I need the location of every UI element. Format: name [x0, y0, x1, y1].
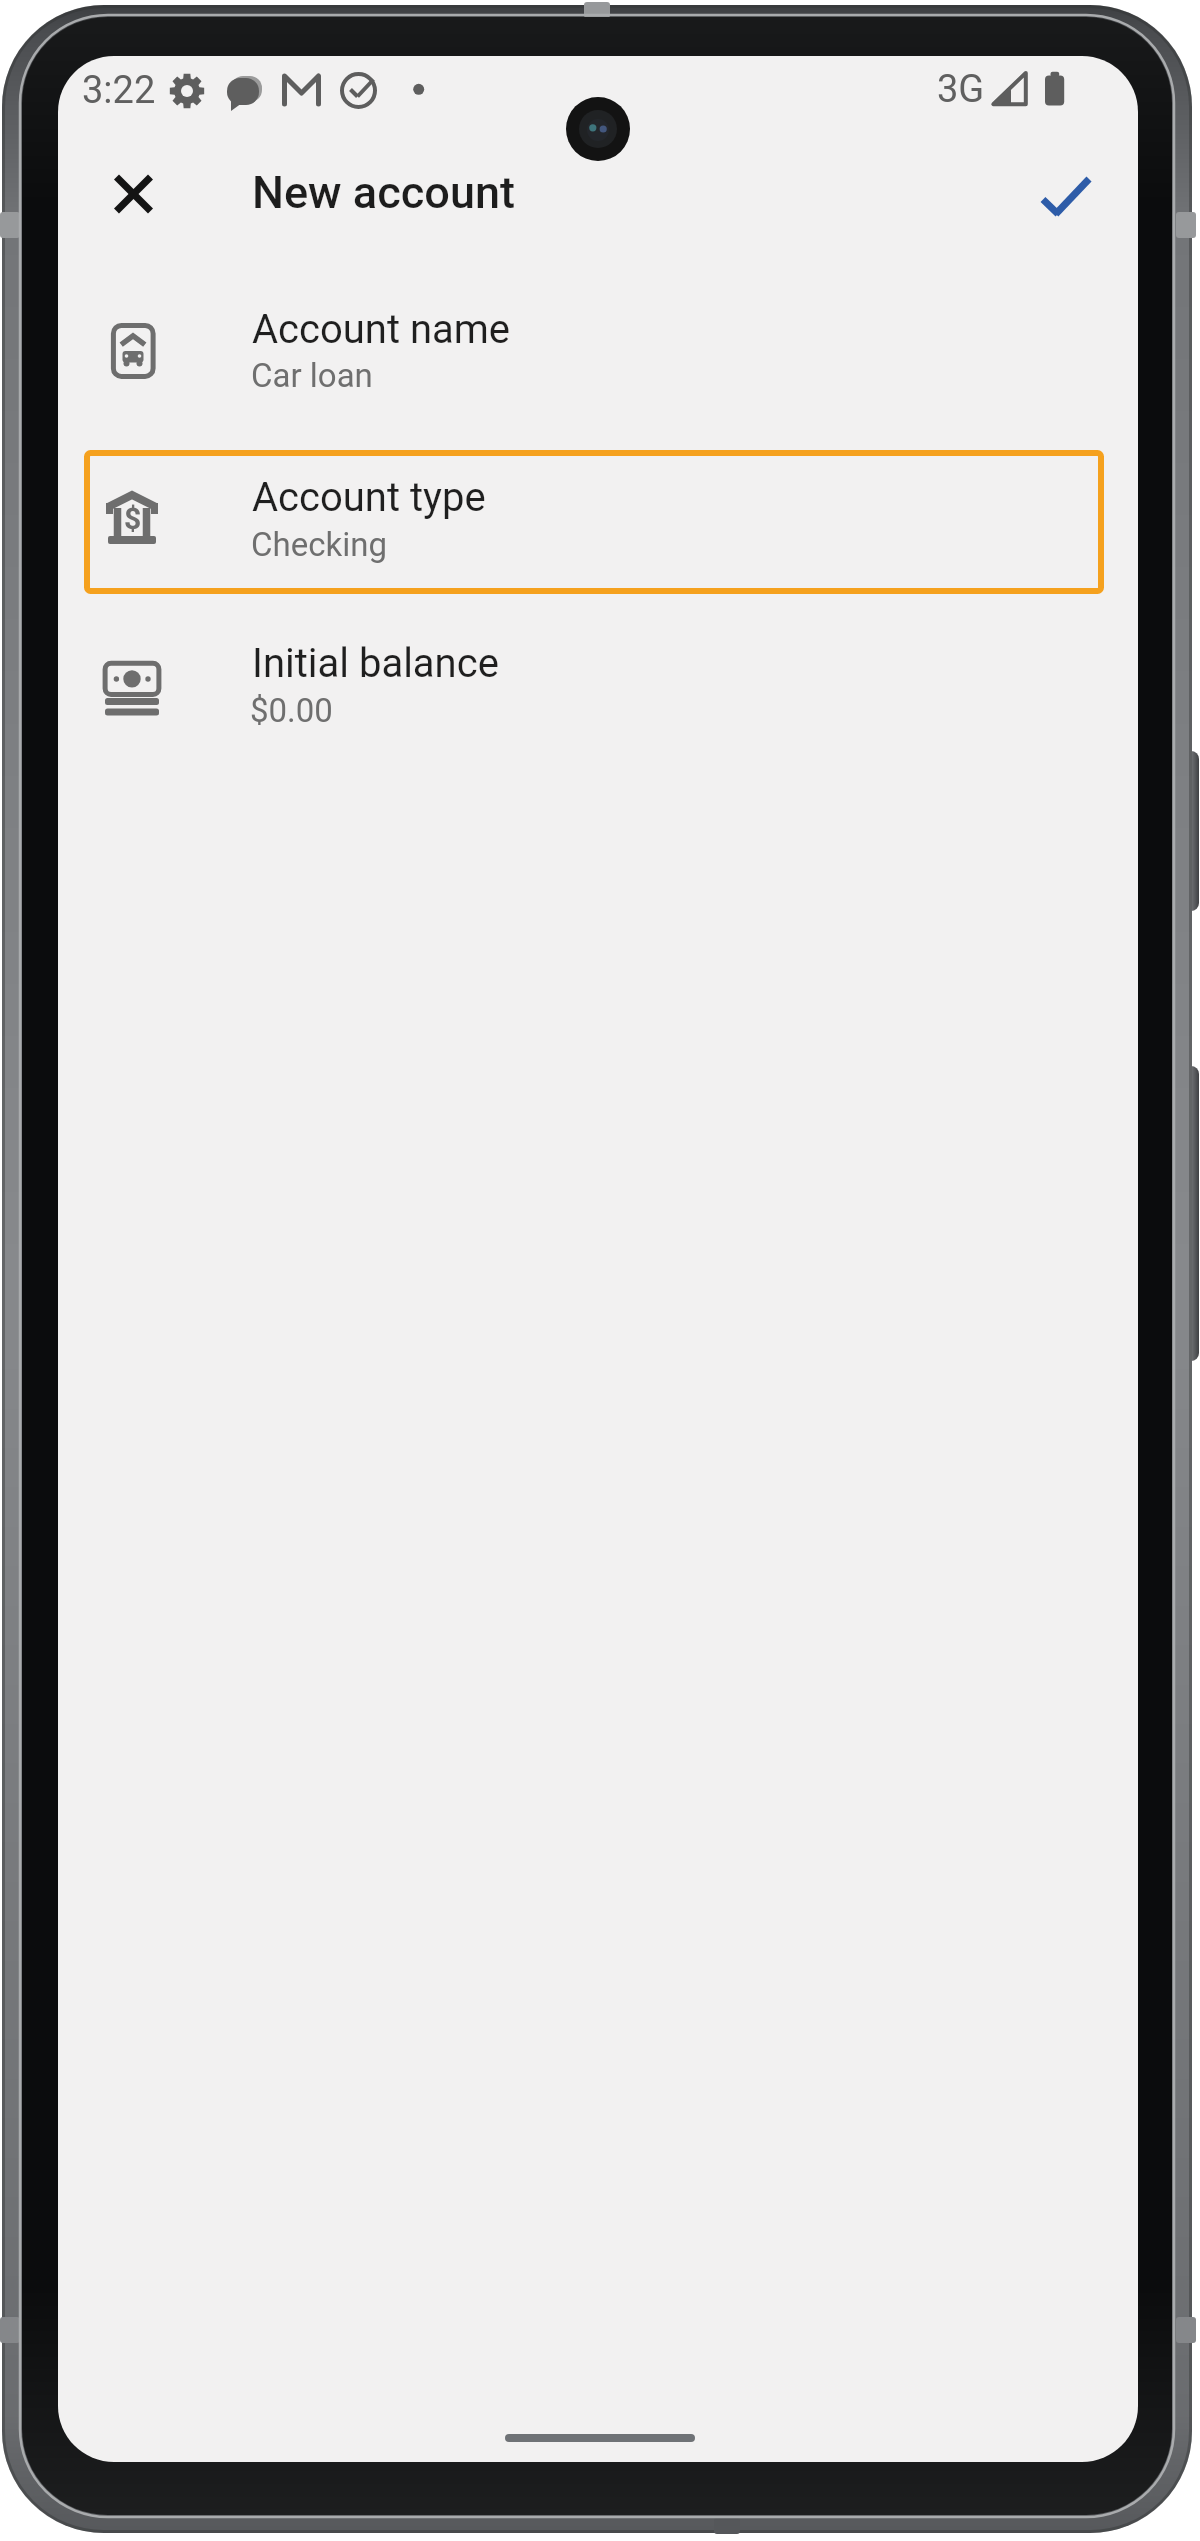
- staticText: $0.00: [250, 691, 333, 730]
- button[interactable]: [58, 636, 1138, 786]
- staticText: $: [124, 501, 142, 536]
- button[interactable]: [58, 302, 1138, 450]
- button[interactable]: [97, 158, 169, 230]
- staticText: 3:22: [82, 68, 156, 113]
- staticText: Checking: [251, 525, 387, 564]
- button[interactable]: [84, 450, 1104, 594]
- button[interactable]: [1022, 161, 1112, 233]
- staticText: Car loan: [251, 356, 373, 395]
- staticText: Account name: [252, 306, 511, 353]
- staticText: 3G: [937, 67, 985, 112]
- staticText: New account: [252, 166, 515, 219]
- staticText: Initial balance: [252, 640, 499, 687]
- staticText: Account type: [252, 474, 486, 521]
